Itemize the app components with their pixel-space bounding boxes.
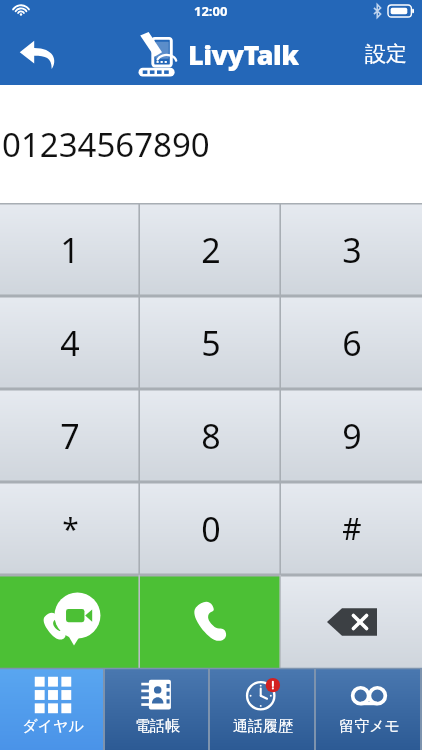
button[interactable]: 2 xyxy=(140,203,281,296)
button[interactable]: 5 xyxy=(140,296,281,389)
staticText: 4 xyxy=(60,320,80,366)
staticText: ダイヤル xyxy=(22,717,84,736)
button[interactable]: * xyxy=(0,482,140,575)
button[interactable]: 1 xyxy=(0,203,140,296)
button[interactable]: 戻る xyxy=(0,22,76,85)
button[interactable]: # xyxy=(281,482,422,575)
staticText: 8 xyxy=(201,413,221,459)
button[interactable]: 8 xyxy=(140,389,281,482)
staticText: 電話帳 xyxy=(135,717,180,736)
staticText: # xyxy=(342,508,362,549)
staticText: 2 xyxy=(201,227,221,273)
staticText: 7 xyxy=(60,413,80,459)
button[interactable]: 9 xyxy=(281,389,422,482)
button[interactable]: 6 xyxy=(281,296,422,389)
staticText: 9 xyxy=(342,413,362,459)
staticText: 1 xyxy=(60,227,80,273)
staticText: 3 xyxy=(342,227,362,273)
staticText: 5 xyxy=(201,320,221,366)
staticText: LivyTalk xyxy=(188,36,299,73)
button[interactable]: 削除 xyxy=(281,575,422,668)
button[interactable]: 音声発信 xyxy=(140,575,281,668)
button[interactable]: テレビ電話発信 xyxy=(0,575,140,668)
staticText: * xyxy=(62,508,79,549)
button[interactable]: 3 xyxy=(281,203,422,296)
button[interactable]: 留守メモ xyxy=(316,668,422,750)
button[interactable]: 4 xyxy=(0,296,140,389)
button[interactable]: ダイヤル xyxy=(0,668,105,750)
staticText: 6 xyxy=(342,320,362,366)
staticText: 0 xyxy=(201,506,221,552)
staticText: 01234567890 xyxy=(2,122,210,167)
button[interactable]: 通話履歴 xyxy=(210,668,316,750)
staticText: 設定 xyxy=(365,41,407,67)
staticText: 12:00 xyxy=(194,2,228,20)
button[interactable]: 0 xyxy=(140,482,281,575)
button[interactable]: 設定 xyxy=(350,22,422,85)
button[interactable]: 電話帳 xyxy=(105,668,210,750)
staticText: 通話履歴 xyxy=(233,717,293,736)
button[interactable]: 7 xyxy=(0,389,140,482)
staticText: 留守メモ xyxy=(339,717,400,736)
